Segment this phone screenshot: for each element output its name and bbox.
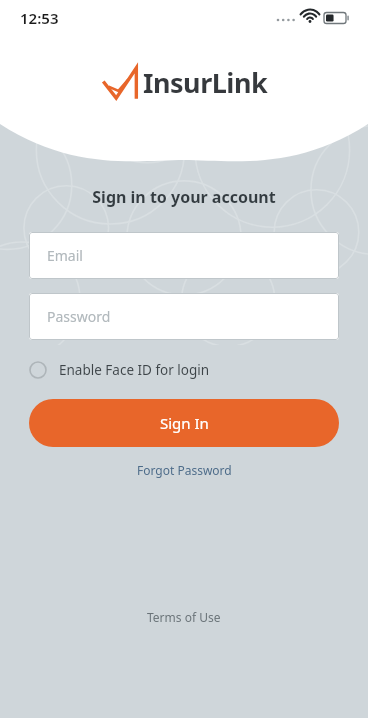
button[interactable]: Sign In	[29, 399, 339, 447]
staticText: InsurLink	[143, 64, 268, 101]
other: InsurLink logo	[101, 65, 139, 101]
staticText: Sign In	[160, 413, 209, 433]
staticText: Terms of Use	[147, 609, 221, 625]
staticText: Forgot Password	[137, 462, 232, 478]
staticText: Enable Face ID for login	[59, 361, 210, 379]
button[interactable]: Email	[29, 232, 339, 279]
staticText: Sign in to your account	[92, 186, 276, 208]
staticText: Password	[47, 307, 111, 326]
button[interactable]: Password	[29, 293, 339, 340]
staticText: Email	[47, 246, 83, 265]
button[interactable]: Forgot Password	[131, 460, 238, 480]
button[interactable]: Enable Face ID for login	[29, 361, 339, 379]
button[interactable]: Terms of Use	[139, 606, 229, 628]
staticText: 12:53	[20, 8, 59, 28]
